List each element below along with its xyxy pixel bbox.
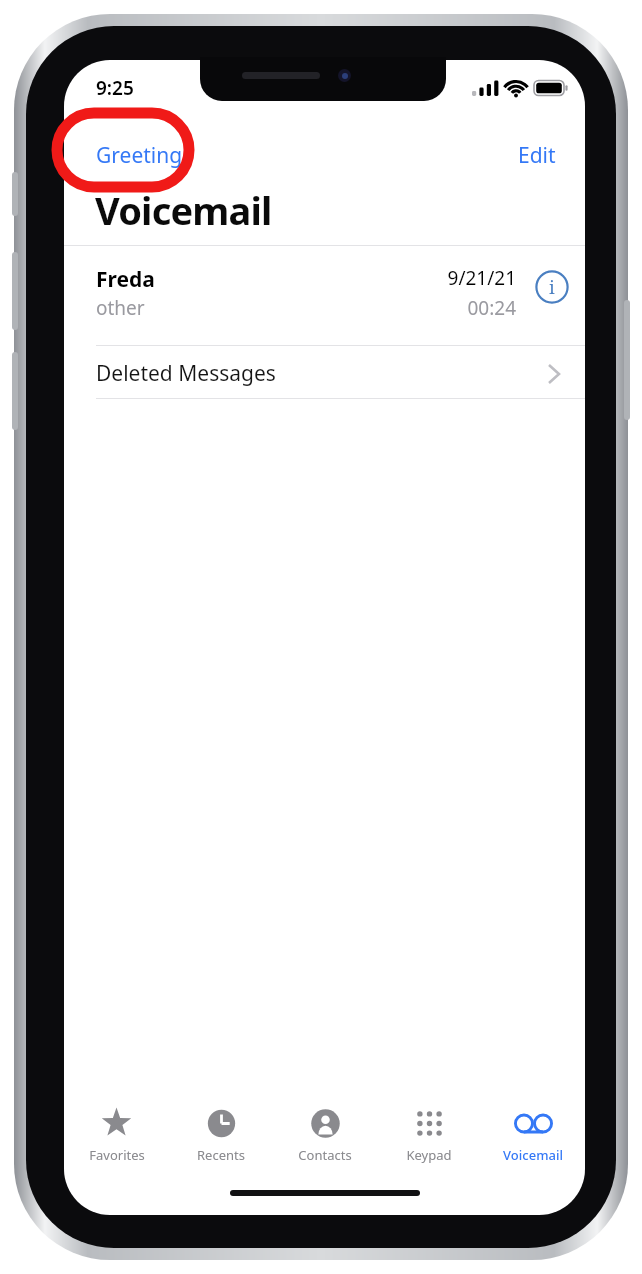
button[interactable]: Greeting <box>86 133 193 177</box>
staticText: Deleted Messages <box>96 359 276 388</box>
staticText: 00:24 <box>416 295 516 321</box>
staticText: Voicemail <box>503 1146 563 1164</box>
staticText: Freda <box>96 265 155 294</box>
staticText: 9:25 <box>96 75 134 101</box>
staticText: Voicemail <box>95 184 272 236</box>
staticText: Recents <box>197 1146 245 1164</box>
staticText: i <box>549 275 555 300</box>
button[interactable]: Recents <box>169 1098 273 1184</box>
staticText: other <box>96 295 145 321</box>
button[interactable]: Keypad <box>377 1098 481 1184</box>
button[interactable]: Freda <box>64 246 585 345</box>
button[interactable]: Voicemail <box>481 1098 585 1184</box>
staticText: 9/21/21 <box>416 265 516 291</box>
staticText: Greeting <box>96 141 183 170</box>
button[interactable]: Deleted Messages <box>64 346 585 398</box>
staticText: Contacts <box>298 1146 352 1164</box>
button[interactable]: Contacts <box>273 1098 377 1184</box>
button[interactable]: Voicemail details <box>527 262 577 312</box>
staticText: Favorites <box>89 1146 145 1164</box>
button[interactable]: Edit <box>508 133 566 177</box>
button[interactable]: Favorites <box>64 1098 169 1184</box>
staticText: Edit <box>518 141 556 170</box>
staticText: Keypad <box>406 1146 452 1164</box>
